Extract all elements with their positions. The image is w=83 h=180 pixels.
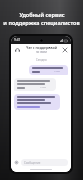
- staticText: 14:03: [40, 86, 46, 89]
- button[interactable]: 14:03: [14, 78, 56, 91]
- button[interactable]: [14, 94, 60, 110]
- button[interactable]: Закрыть: [62, 47, 68, 53]
- staticText: Сегодня: [36, 58, 47, 62]
- staticText: 9:41: [14, 38, 21, 42]
- button[interactable]: 14:02: [29, 65, 68, 75]
- staticText: и поддержка специалистов: [3, 19, 80, 26]
- staticText: на связи: [36, 50, 47, 54]
- staticText: Удобный сервис: [19, 11, 65, 18]
- button[interactable]: Сообщение: [21, 159, 68, 166]
- staticText: Чат с поддержкой: [26, 45, 57, 50]
- button[interactable]: Поддержка: [14, 47, 20, 53]
- button[interactable]: Прикрепить: [14, 160, 19, 165]
- staticText: Сообщение: [24, 161, 41, 165]
- staticText: 14:02: [54, 70, 60, 73]
